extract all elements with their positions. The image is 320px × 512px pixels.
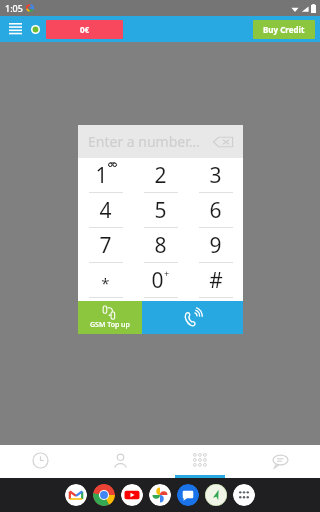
button[interactable]: All apps [233, 484, 255, 506]
button[interactable]: Messages [240, 445, 320, 475]
staticText: 3 [209, 161, 222, 190]
button[interactable]: Menu [5, 19, 25, 39]
button[interactable]: Contacts [80, 445, 160, 475]
button[interactable]: # [188, 263, 243, 297]
button[interactable]: 4 [78, 193, 133, 227]
button[interactable]: Chrome [93, 484, 115, 506]
button[interactable]: Keypad [160, 445, 240, 475]
staticText: 1:05 [5, 2, 23, 14]
button[interactable]: Enter a number... [78, 125, 243, 158]
button[interactable]: Backspace [213, 135, 233, 149]
button[interactable]: Recents [0, 445, 80, 475]
staticText: # [209, 266, 223, 295]
button[interactable]: 8 [133, 228, 188, 262]
staticText: 0 [151, 266, 164, 295]
button[interactable]: YouTube [121, 484, 143, 506]
button[interactable]: 3 [188, 158, 243, 192]
button[interactable]: 0€ [46, 20, 123, 39]
button[interactable]: Call [142, 301, 243, 334]
staticText: 8 [154, 231, 167, 260]
staticText: 1 [95, 161, 108, 190]
button[interactable]: Photos [149, 484, 171, 506]
staticText: * [101, 273, 110, 293]
button[interactable]: 1 [78, 158, 133, 192]
staticText: 2 [154, 161, 167, 190]
staticText: 6 [209, 196, 222, 225]
button[interactable]: 6 [188, 193, 243, 227]
button[interactable]: 9 [188, 228, 243, 262]
button[interactable]: Messages [177, 484, 199, 506]
button[interactable]: 5 [133, 193, 188, 227]
button[interactable]: 7 [78, 228, 133, 262]
staticText: 4 [99, 196, 112, 225]
staticText: 0€ [80, 24, 90, 35]
staticText: 7 [99, 231, 112, 260]
staticText: 9 [209, 231, 222, 260]
staticText: + [164, 267, 170, 279]
button[interactable]: Status [27, 21, 43, 37]
button[interactable]: GSM Top up [78, 301, 142, 334]
button[interactable]: Gmail [65, 484, 87, 506]
button[interactable]: * [78, 263, 133, 297]
button[interactable]: Maps [205, 484, 227, 506]
staticText: 5 [154, 196, 167, 225]
staticText: Buy Credit [263, 24, 305, 35]
button[interactable]: Buy Credit [253, 20, 315, 39]
button[interactable]: 0 [133, 263, 188, 297]
button[interactable]: 2 [133, 158, 188, 192]
staticText: GSM Top up [90, 320, 130, 330]
staticText: Enter a number... [88, 132, 200, 151]
